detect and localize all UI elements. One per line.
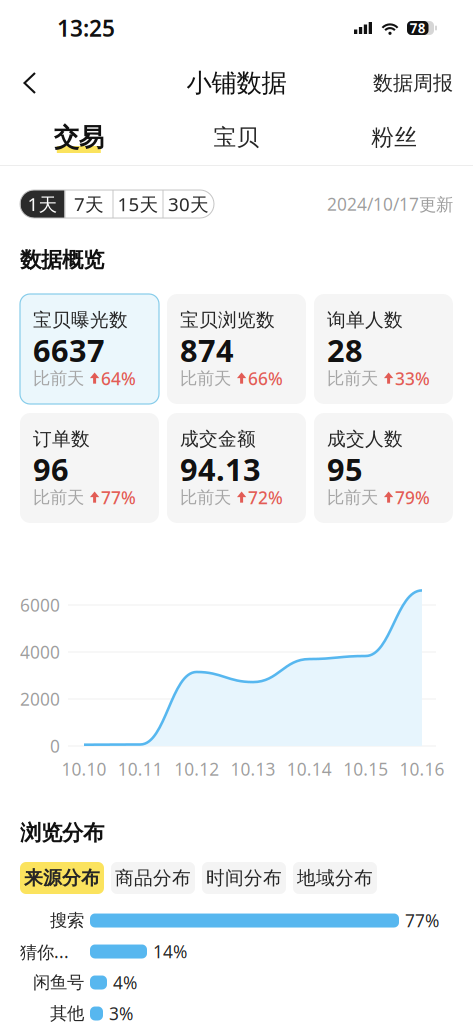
staticText: 0 xyxy=(50,734,60,757)
staticText: 15天 xyxy=(117,192,158,216)
staticText: 30天 xyxy=(168,192,209,216)
staticText: 13:25 xyxy=(57,13,115,43)
staticText: 6000 xyxy=(20,593,60,616)
staticText: 10.16 xyxy=(399,757,444,780)
staticText: 64% xyxy=(101,367,136,390)
staticText: 7天 xyxy=(74,192,104,216)
staticText: 33% xyxy=(395,367,430,390)
staticText: 宝贝曝光数 xyxy=(33,308,128,331)
staticText: 96 xyxy=(33,449,69,489)
staticText: 4000 xyxy=(20,640,60,663)
staticText: 比前天 xyxy=(33,368,84,389)
button[interactable]: 来源分布 xyxy=(20,862,104,894)
staticText: 95 xyxy=(327,449,363,489)
staticText: 比前天 xyxy=(180,368,231,389)
staticText: 小铺数据 xyxy=(186,67,286,98)
staticText: 28 xyxy=(327,330,363,370)
button[interactable]: 交易 xyxy=(0,110,158,165)
staticText: 10.11 xyxy=(118,757,163,780)
button[interactable]: 数据周报 xyxy=(373,61,453,105)
staticText: 14% xyxy=(153,940,187,963)
button[interactable]: 宝贝浏览数 xyxy=(167,294,306,404)
staticText: 粉丝 xyxy=(371,124,417,151)
staticText: 6637 xyxy=(33,330,105,370)
staticText: 其他 xyxy=(50,1003,84,1024)
staticText: 10.13 xyxy=(230,757,275,780)
button[interactable]: 订单数 xyxy=(20,413,159,523)
staticText: 2000 xyxy=(20,687,60,710)
staticText: 比前天 xyxy=(327,368,378,389)
staticText: 交易 xyxy=(54,122,104,153)
staticText: 浏览分布 xyxy=(20,820,104,846)
staticText: 3% xyxy=(109,1002,133,1024)
staticText: 数据概览 xyxy=(20,247,104,273)
button[interactable]: 宝贝曝光数 xyxy=(20,294,159,404)
staticText: 闲鱼号 xyxy=(33,972,84,993)
staticText: 宝贝浏览数 xyxy=(180,308,275,331)
staticText: 数据周报 xyxy=(373,71,453,95)
staticText: 94.13 xyxy=(180,449,261,489)
staticText: 比前天 xyxy=(327,487,378,508)
button[interactable]: 7天 xyxy=(65,190,112,218)
staticText: 874 xyxy=(180,330,234,370)
button[interactable]: 15天 xyxy=(113,190,162,218)
staticText: 订单数 xyxy=(33,427,90,450)
staticText: 成交人数 xyxy=(327,427,403,450)
staticText: 77% xyxy=(101,486,136,509)
staticText: 10.15 xyxy=(343,757,388,780)
staticText: 10.10 xyxy=(61,757,106,780)
staticText: 来源分布 xyxy=(24,866,100,889)
staticText: 地域分布 xyxy=(297,866,373,889)
staticText: 宝贝 xyxy=(213,124,259,151)
staticText: 比前天 xyxy=(33,487,84,508)
staticText: 10.14 xyxy=(287,757,332,780)
button[interactable]: 商品分布 xyxy=(111,862,195,894)
staticText: 2024/10/17更新 xyxy=(327,192,453,215)
staticText: 时间分布 xyxy=(206,866,282,889)
staticText: 1天 xyxy=(27,192,57,216)
staticText: 猜你喜欢 xyxy=(20,940,84,963)
button[interactable]: 成交人数 xyxy=(314,413,453,523)
button[interactable]: 粉丝 xyxy=(315,110,473,165)
staticText: 77% xyxy=(405,909,439,932)
staticText: 78 xyxy=(410,19,426,37)
button[interactable]: 成交金额 xyxy=(167,413,306,523)
staticText: 10.12 xyxy=(174,757,219,780)
staticText: 比前天 xyxy=(180,487,231,508)
staticText: 询单人数 xyxy=(327,308,403,331)
staticText: 成交金额 xyxy=(180,427,256,450)
staticText: 72% xyxy=(248,486,283,509)
button[interactable]: 返回 xyxy=(8,61,52,105)
button[interactable]: 时间分布 xyxy=(202,862,286,894)
staticText: 搜索 xyxy=(50,910,84,931)
button[interactable]: 询单人数 xyxy=(314,294,453,404)
staticText: 66% xyxy=(248,367,283,390)
button[interactable]: 宝贝 xyxy=(158,110,315,165)
button[interactable]: 地域分布 xyxy=(293,862,377,894)
staticText: 79% xyxy=(395,486,430,509)
button[interactable]: 30天 xyxy=(163,190,213,218)
staticText: 商品分布 xyxy=(115,866,191,889)
button[interactable]: 1天 xyxy=(20,190,64,218)
staticText: 4% xyxy=(113,971,137,994)
